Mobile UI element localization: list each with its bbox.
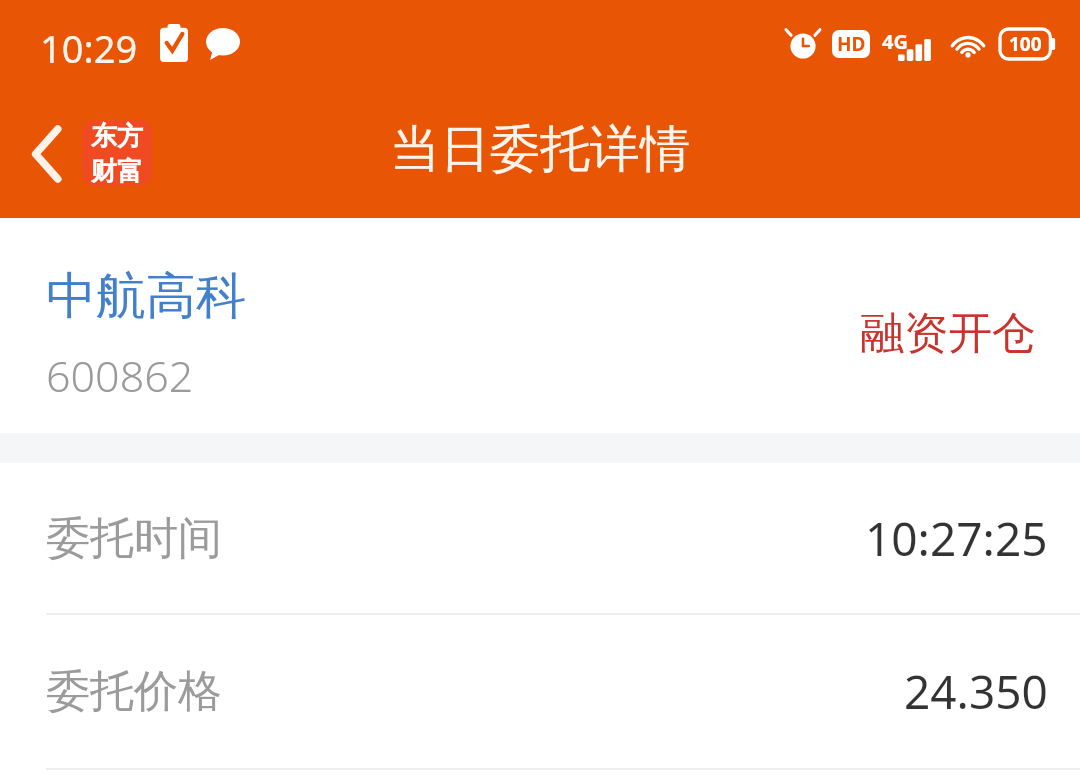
staticText: 委托价格	[46, 664, 222, 719]
staticText: 4G	[882, 28, 908, 55]
staticText: 当日委托详情	[390, 118, 690, 181]
button[interactable]: 委托价格	[0, 615, 1080, 768]
staticText: 委托时间	[46, 511, 222, 566]
staticText: 财富	[91, 155, 143, 186]
staticText: 100	[1009, 31, 1042, 57]
button[interactable]: 东方财富	[82, 120, 152, 186]
staticText: 东方	[91, 120, 143, 153]
button[interactable]: Back	[10, 112, 84, 196]
staticText: HD	[837, 31, 866, 57]
staticText: 10:29	[40, 22, 138, 74]
staticText: 600862	[46, 346, 194, 405]
staticText: 融资开仓	[860, 306, 1036, 361]
staticText: 中航高科	[46, 265, 246, 328]
button[interactable]: 委托时间	[0, 463, 1080, 613]
staticText: 24.350	[904, 660, 1048, 723]
staticText: 10:27:25	[865, 507, 1048, 570]
